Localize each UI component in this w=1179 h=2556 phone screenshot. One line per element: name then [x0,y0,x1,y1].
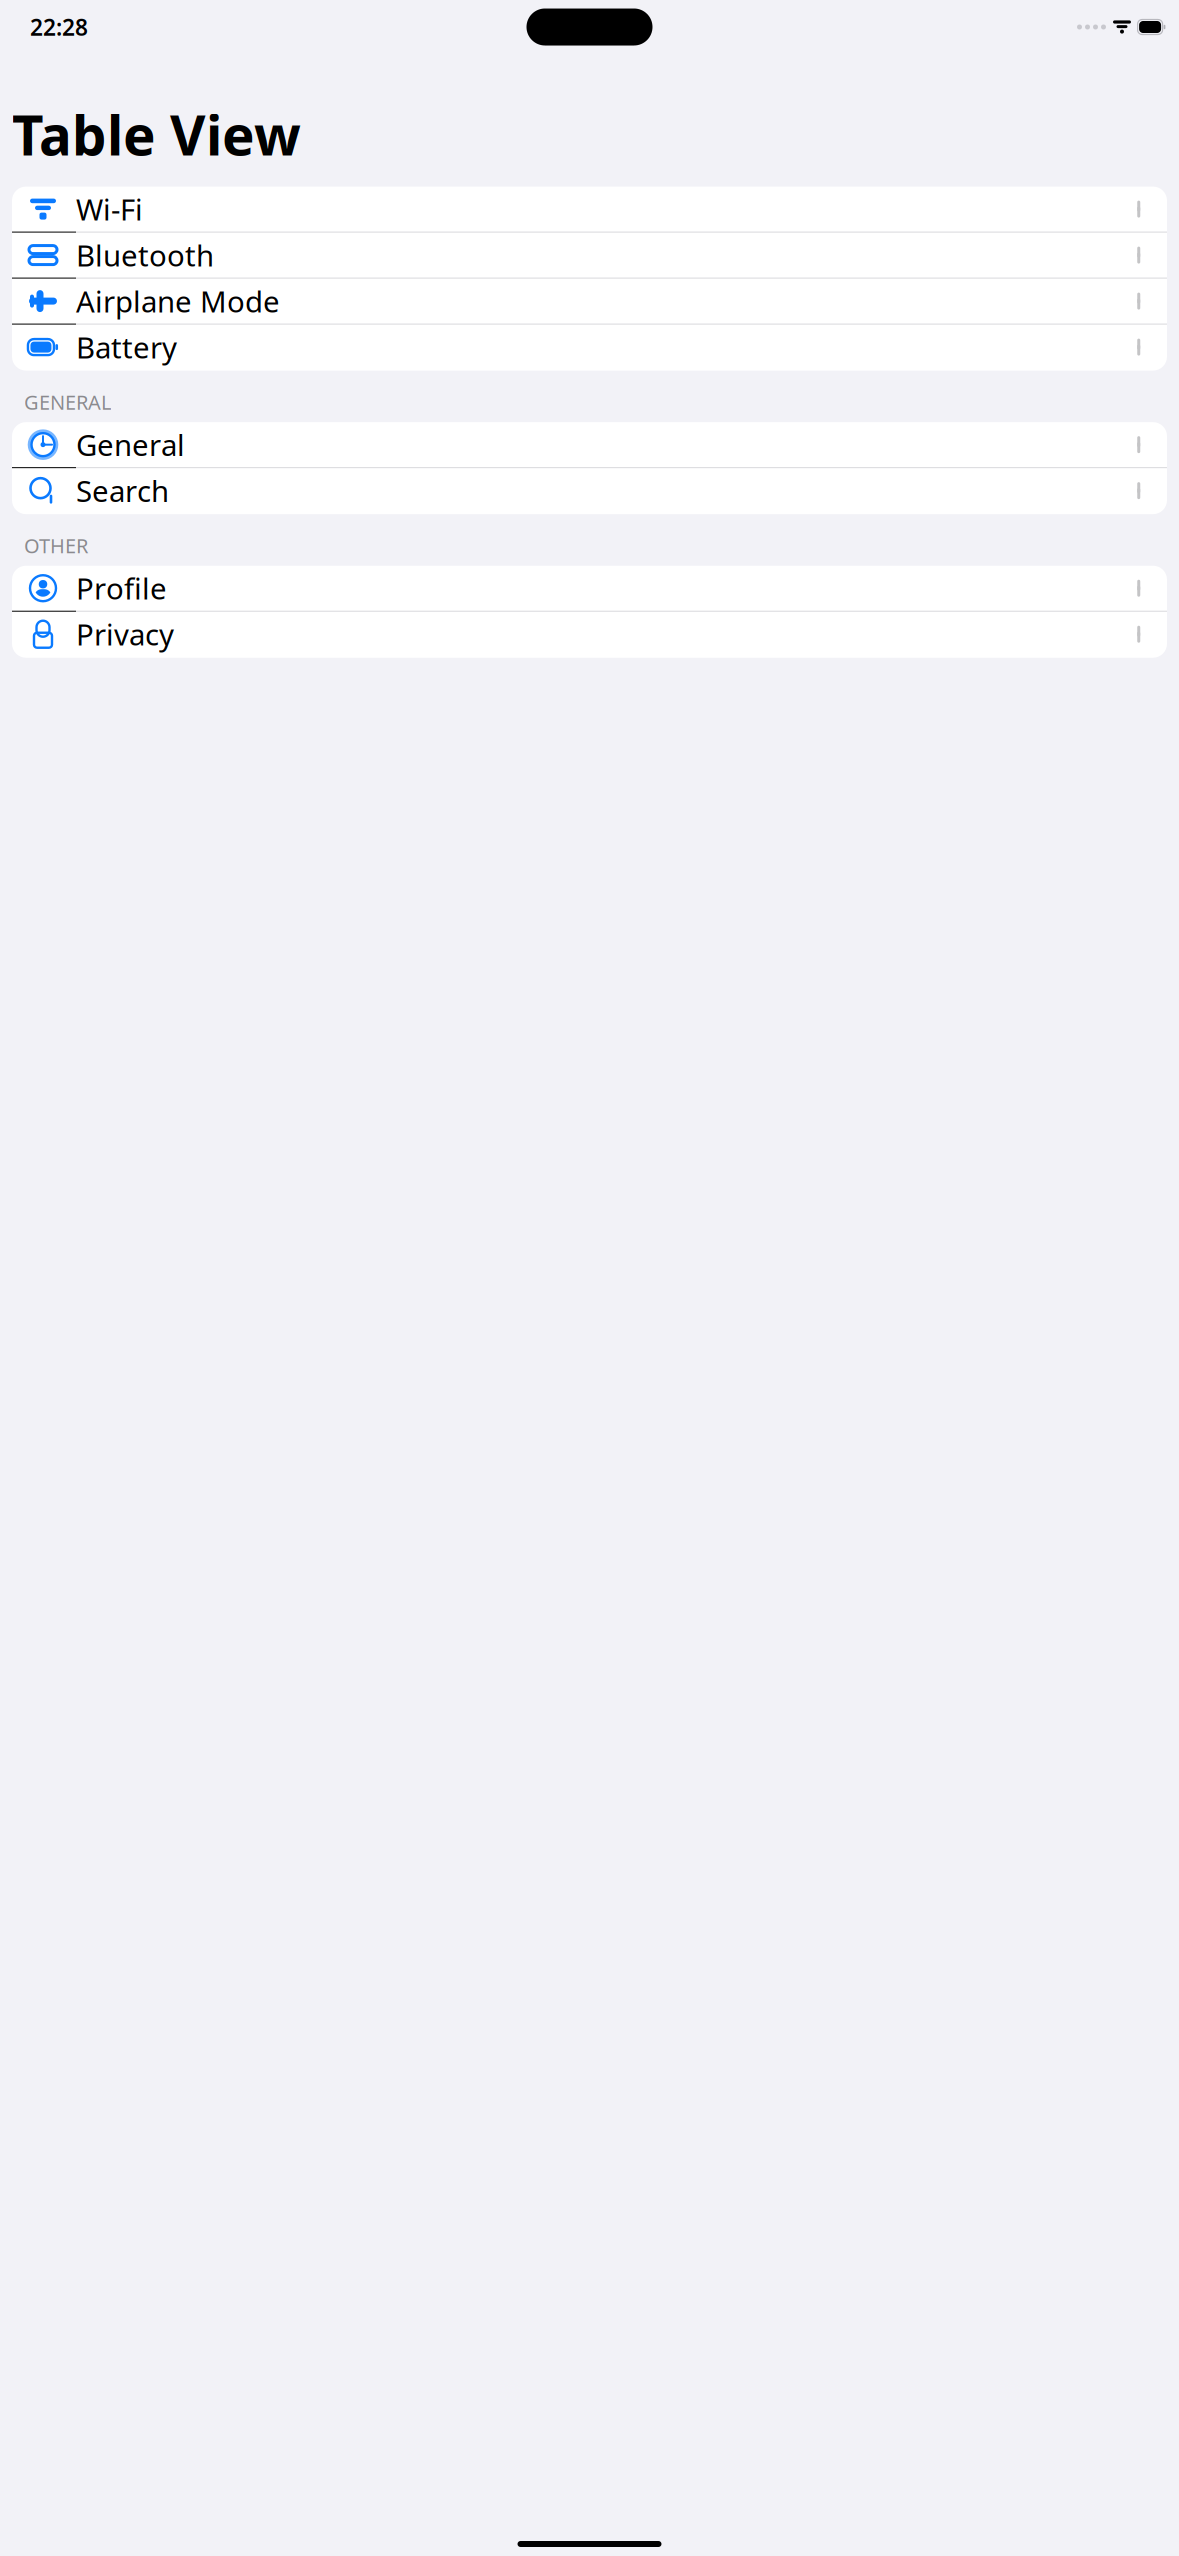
staticText: General [76,425,185,464]
button[interactable]: Battery [12,325,1167,371]
staticText: Battery [76,328,177,367]
staticText: OTHER [24,532,88,559]
staticText: Wi-Fi [76,190,143,229]
button[interactable]: Privacy [12,612,1167,658]
button[interactable]: Airplane Mode [12,279,1167,325]
staticText: Profile [76,569,167,608]
button[interactable]: Bluetooth [12,233,1167,279]
staticText: Privacy [76,615,174,654]
staticText: 22:28 [30,12,88,42]
staticText: Bluetooth [76,236,214,275]
button[interactable]: Wi-Fi [12,187,1167,233]
button[interactable]: Profile [12,566,1167,612]
staticText: Search [76,471,169,510]
staticText: Table View [12,98,301,171]
button[interactable]: General [12,422,1167,468]
staticText: GENERAL [24,389,111,415]
staticText: Airplane Mode [76,282,280,321]
button[interactable]: Search [12,468,1167,514]
